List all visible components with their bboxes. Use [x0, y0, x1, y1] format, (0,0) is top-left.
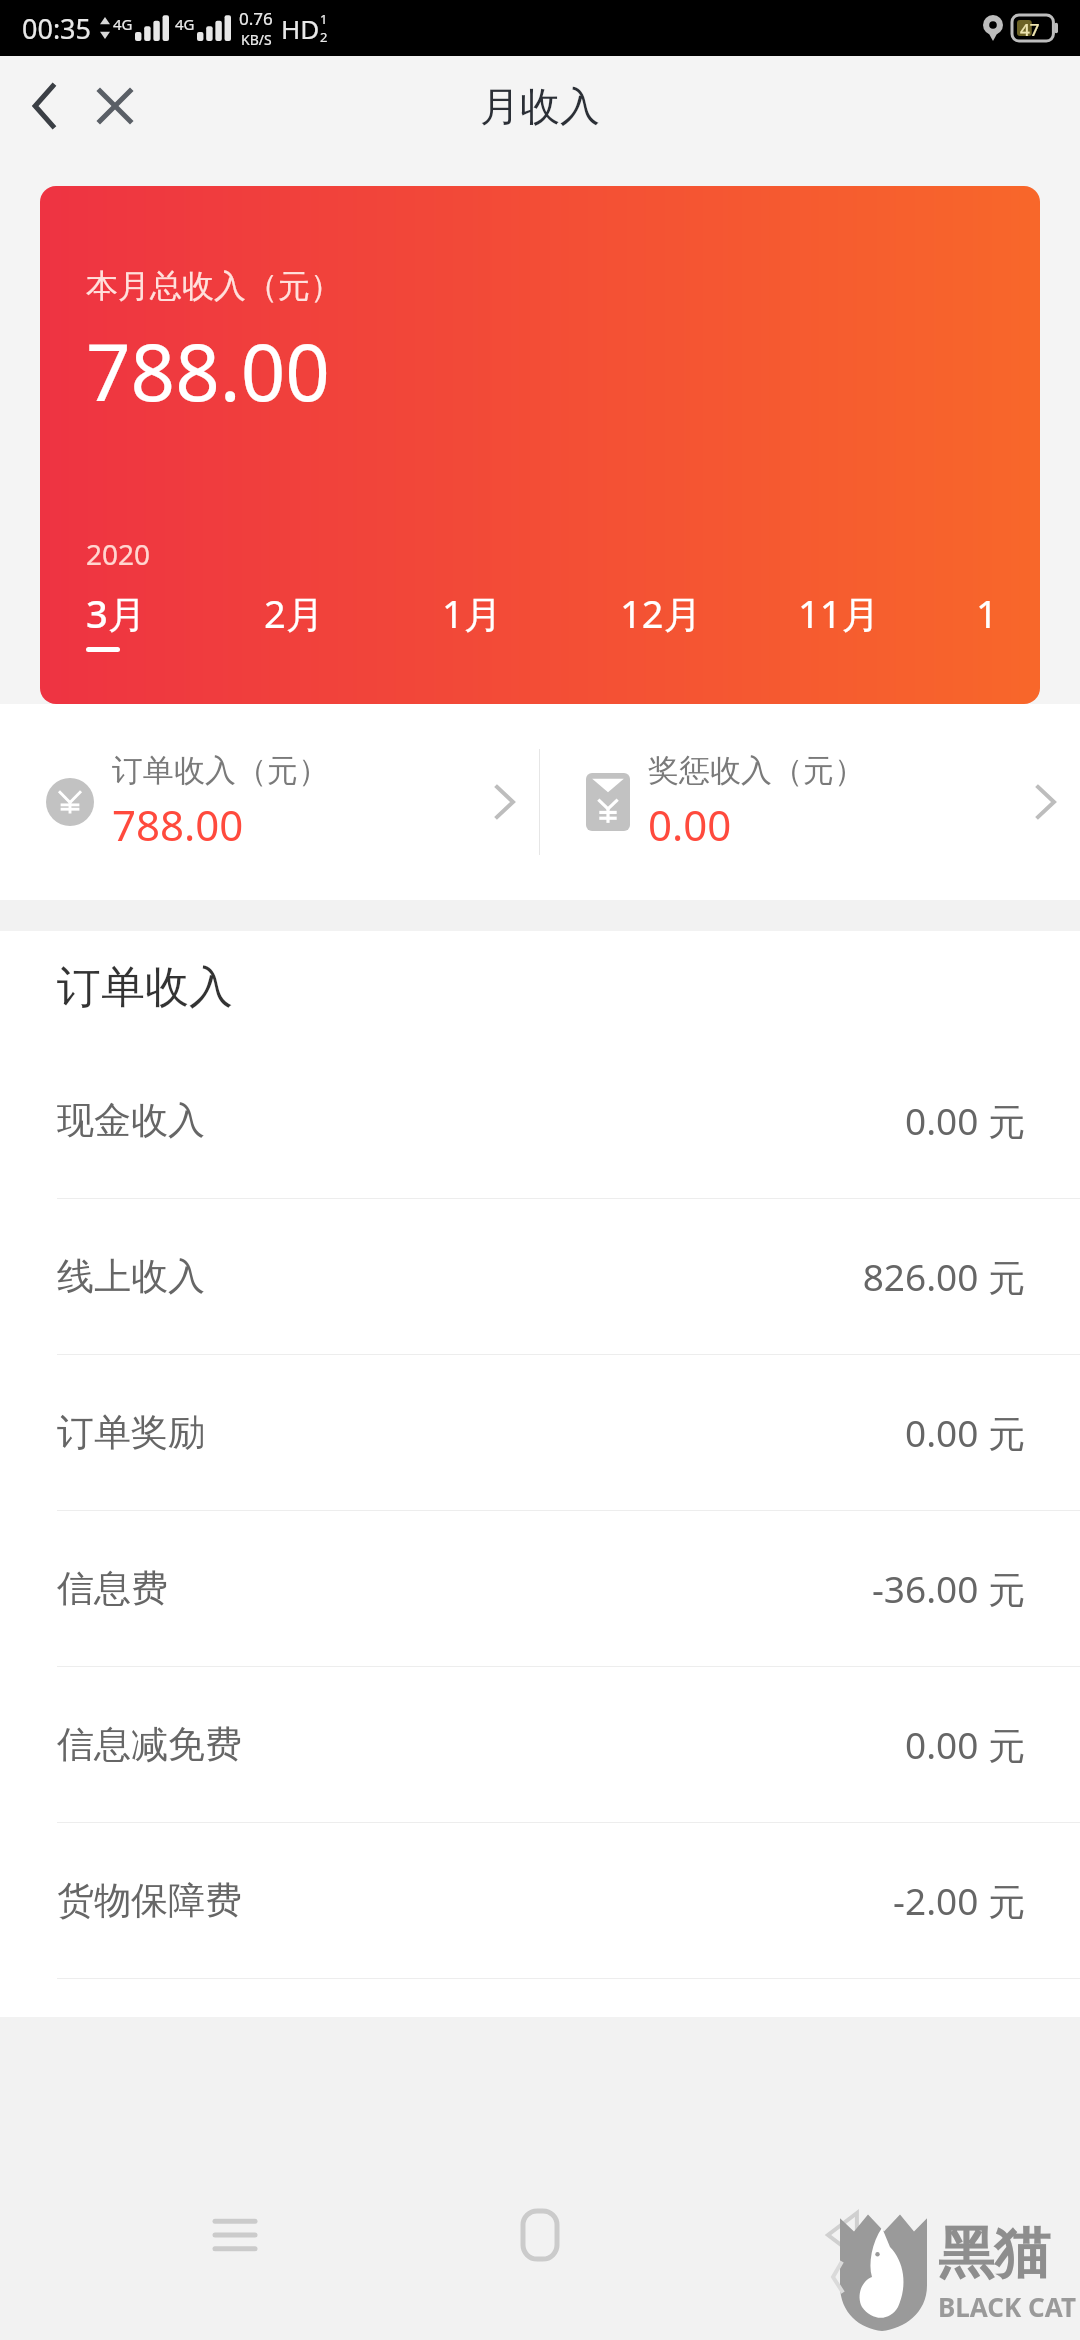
- staticText: 788.00: [112, 796, 244, 853]
- button[interactable]: Close: [80, 71, 150, 141]
- staticText: 货物保障费: [57, 1877, 242, 1924]
- button[interactable]: Home: [470, 2175, 610, 2295]
- staticText: 4G: [175, 14, 195, 34]
- button[interactable]: 信息减免费: [0, 1667, 1080, 1822]
- staticText: 月收入: [480, 81, 600, 131]
- staticText: 线上收入: [57, 1253, 205, 1300]
- button[interactable]: 2月: [264, 587, 442, 639]
- staticText: 47: [1020, 18, 1040, 38]
- button[interactable]: 3月: [86, 587, 264, 652]
- staticText: 826.00 元: [862, 1251, 1025, 1302]
- button[interactable]: Back: [10, 71, 80, 141]
- button[interactable]: 12月: [620, 587, 798, 639]
- button[interactable]: 1月: [442, 587, 620, 639]
- staticText: 3月: [86, 587, 146, 639]
- staticText: 2月: [264, 587, 324, 639]
- button[interactable]: 奖惩收入（元）: [540, 704, 1080, 900]
- staticText: 黑猫: [938, 2218, 1050, 2289]
- button[interactable]: 1: [976, 587, 1040, 639]
- staticText: 4G: [113, 14, 133, 34]
- staticText: 0.00 元: [904, 1719, 1025, 1770]
- staticText: 现金收入: [57, 1097, 205, 1144]
- staticText: 12月: [620, 587, 702, 639]
- button[interactable]: Back: [775, 2175, 915, 2295]
- staticText: 订单收入: [57, 960, 233, 1015]
- staticText: 订单奖励: [57, 1409, 205, 1456]
- staticText: 奖惩收入（元）: [648, 751, 865, 790]
- staticText: 2020: [86, 535, 151, 573]
- staticText: KB/S: [241, 30, 272, 49]
- staticText: HD: [281, 11, 320, 46]
- staticText: 788.00: [86, 318, 330, 424]
- button[interactable]: 货物保障费: [0, 1823, 1080, 1978]
- staticText: 1月: [442, 587, 502, 639]
- staticText: 本月总收入（元）: [86, 266, 342, 306]
- button[interactable]: 信息费: [0, 1511, 1080, 1666]
- staticText: 11月: [798, 587, 880, 639]
- button[interactable]: 现金收入: [0, 1043, 1080, 1198]
- staticText: -2.00 元: [893, 1875, 1025, 1926]
- button[interactable]: 订单奖励: [0, 1355, 1080, 1510]
- button[interactable]: 11月: [798, 587, 976, 639]
- staticText: 0.00: [648, 796, 732, 853]
- staticText: 00:35: [22, 10, 92, 47]
- staticText: 0.76: [239, 7, 273, 30]
- staticText: 信息费: [57, 1565, 168, 1612]
- button[interactable]: Recents: [165, 2175, 305, 2295]
- staticText: -36.00 元: [871, 1563, 1025, 1614]
- staticText: 0.00 元: [904, 1095, 1025, 1146]
- staticText: BLACK CAT: [938, 2289, 1076, 2324]
- button[interactable]: 线上收入: [0, 1199, 1080, 1354]
- button[interactable]: 订单收入（元）: [0, 704, 539, 900]
- staticText: 1: [976, 587, 998, 639]
- staticText: 信息减免费: [57, 1721, 242, 1768]
- staticText: 订单收入（元）: [112, 751, 329, 790]
- staticText: 2: [320, 28, 328, 46]
- staticText: 1: [320, 10, 328, 28]
- staticText: 0.00 元: [904, 1407, 1025, 1458]
